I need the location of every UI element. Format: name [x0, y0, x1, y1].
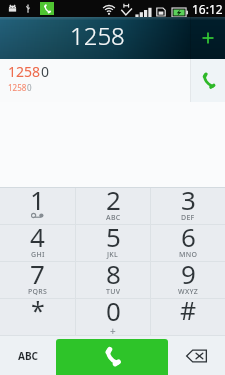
staticText: 0	[41, 62, 50, 81]
staticText: 1258	[70, 19, 125, 52]
staticText: 1258	[8, 82, 27, 93]
staticText: ABC	[106, 213, 121, 223]
button[interactable]: ABC	[0, 336, 56, 375]
staticText: WXYZ	[178, 287, 199, 297]
staticText: 1258	[8, 62, 41, 81]
button[interactable]: Call	[191, 59, 225, 102]
staticText: 6	[181, 219, 196, 254]
button[interactable]: Add contact	[190, 17, 225, 59]
button[interactable]: Backspace	[168, 336, 225, 375]
staticText: GHI	[31, 250, 45, 260]
button[interactable]: 8	[76, 262, 150, 298]
button[interactable]: #	[151, 299, 225, 335]
button[interactable]: *	[0, 299, 75, 335]
staticText: 4	[30, 219, 45, 254]
button[interactable]: 5	[76, 225, 150, 261]
button[interactable]: 0	[76, 299, 150, 335]
button[interactable]: 4	[0, 225, 75, 261]
staticText: 2	[106, 182, 121, 217]
staticText: 5	[106, 219, 121, 254]
staticText: +	[110, 324, 116, 338]
button[interactable]: 7	[0, 262, 75, 298]
button[interactable]: 1	[0, 188, 75, 224]
staticText: ABC	[18, 349, 38, 363]
button[interactable]: 9	[151, 262, 225, 298]
staticText: 9	[181, 256, 196, 291]
staticText: MNO	[179, 250, 198, 260]
staticText: 0	[106, 293, 121, 328]
staticText: 16:12	[192, 1, 223, 17]
button[interactable]: 3	[151, 188, 225, 224]
staticText: 7	[30, 256, 45, 291]
staticText: DEF	[181, 213, 195, 223]
staticText: 1	[30, 182, 45, 217]
staticText: #	[180, 293, 197, 327]
button[interactable]: 6	[151, 225, 225, 261]
staticText: JKL	[107, 250, 119, 260]
button[interactable]: Call	[56, 339, 168, 375]
staticText: 8	[106, 256, 121, 291]
staticText: *	[31, 293, 45, 327]
staticText: 0	[27, 82, 32, 93]
staticText: TUV	[106, 287, 121, 297]
button[interactable]: 2	[76, 188, 150, 224]
staticText: 3	[181, 182, 196, 217]
staticText: PQRS	[28, 287, 48, 297]
